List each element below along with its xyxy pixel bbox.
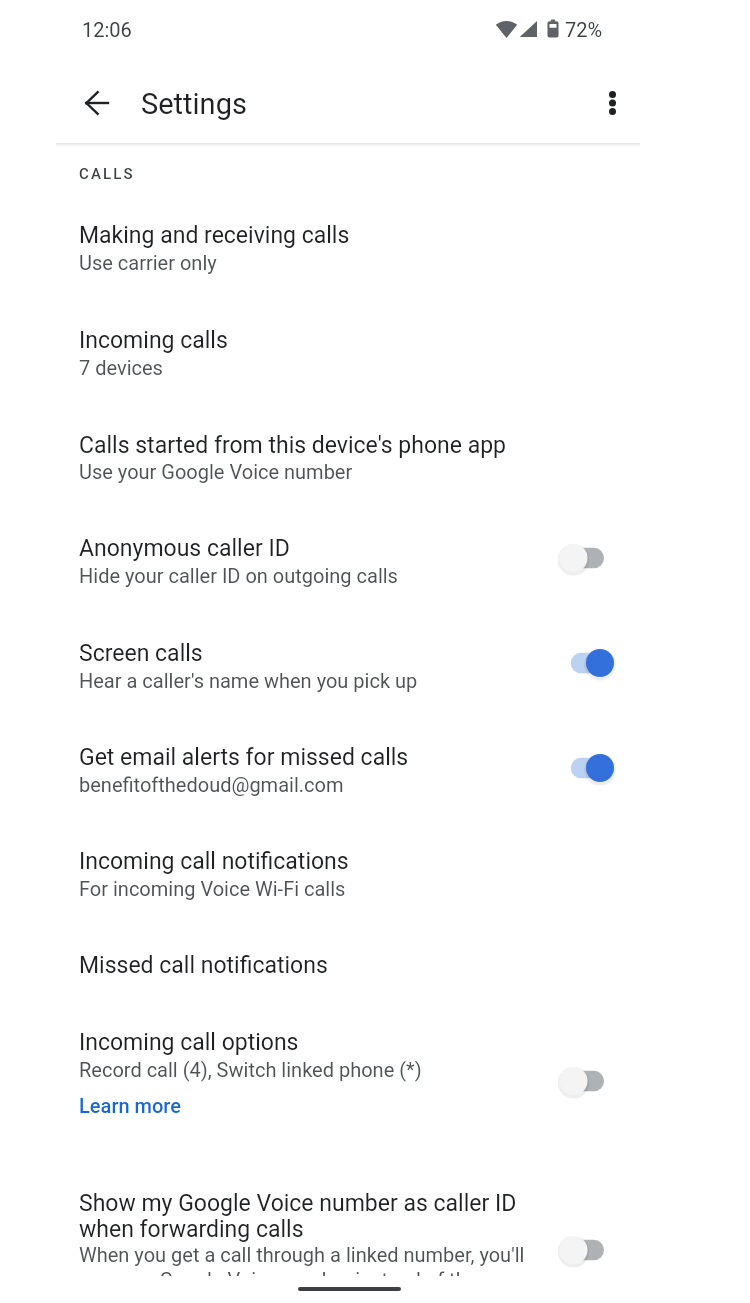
button[interactable]: [0, 305, 750, 405]
staticText: For incoming Voice Wi-Fi calls: [79, 877, 539, 900]
button[interactable]: [0, 410, 750, 510]
staticText: Calls started from this device's phone a…: [79, 432, 529, 459]
button[interactable]: Toggle on: [558, 639, 630, 687]
staticText: Hide your caller ID on outgoing calls: [79, 564, 539, 587]
staticText: Show my Google Voice number as caller ID…: [79, 1190, 529, 1242]
staticText: Incoming calls: [79, 327, 529, 354]
button[interactable]: [0, 1007, 750, 1137]
staticText: Incoming call options: [79, 1029, 529, 1056]
button[interactable]: Toggle off: [558, 1226, 630, 1274]
button[interactable]: [0, 930, 750, 1002]
staticText: Screen calls: [79, 640, 529, 667]
button[interactable]: [0, 618, 750, 718]
button[interactable]: [0, 200, 750, 300]
button[interactable]: Toggle off: [558, 1057, 630, 1105]
button[interactable]: Back: [73, 80, 119, 126]
staticText: 7 devices: [79, 356, 539, 379]
button[interactable]: [0, 826, 750, 926]
staticText: Use your Google Voice number: [79, 460, 539, 483]
staticText: Missed call notifications: [79, 952, 529, 979]
staticText: CALLS: [79, 165, 135, 183]
button[interactable]: Toggle on: [558, 744, 630, 792]
staticText: Making and receiving calls: [79, 222, 529, 249]
staticText: Record call (4), Switch linked phone (*): [79, 1058, 539, 1081]
staticText: 12:06: [82, 18, 132, 41]
staticText: 72%: [565, 18, 603, 41]
button[interactable]: Toggle off: [558, 534, 630, 582]
staticText: benefitofthedoud@gmail.com: [79, 773, 539, 796]
button[interactable]: [0, 1168, 750, 1276]
button[interactable]: [0, 722, 750, 822]
staticText: When you get a call through a linked num…: [79, 1243, 539, 1276]
staticText: Anonymous caller ID: [79, 535, 529, 562]
button[interactable]: More options: [589, 80, 635, 126]
staticText: Hear a caller's name when you pick up: [79, 669, 539, 692]
button[interactable]: [0, 513, 750, 613]
staticText: Get email alerts for missed calls: [79, 744, 529, 771]
staticText: Settings: [141, 87, 247, 121]
button[interactable]: Learn more: [79, 1094, 181, 1117]
staticText: Incoming call notifications: [79, 848, 529, 875]
staticText: Use carrier only: [79, 251, 539, 274]
